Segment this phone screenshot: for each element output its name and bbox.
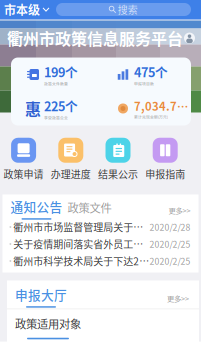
button[interactable]: 个人中心 bbox=[184, 33, 195, 44]
button[interactable]: 申报指南 bbox=[142, 138, 189, 180]
button[interactable]: 搜索 bbox=[56, 3, 191, 16]
staticText: 衢州市市场监督管理局关于… bbox=[11, 220, 143, 234]
staticText: 475个 bbox=[134, 62, 168, 81]
button[interactable]: 申报大厅 bbox=[7, 285, 67, 308]
button[interactable]: 政策适用对象 bbox=[7, 309, 81, 339]
button[interactable]: 市本级 bbox=[0, 0, 56, 19]
staticText: 结果公示 bbox=[98, 167, 138, 181]
staticText: 申报大厅 bbox=[15, 285, 67, 304]
staticText: 享受政策企业 bbox=[44, 115, 68, 120]
staticText: 累计兑现金额(万元) bbox=[134, 114, 168, 119]
staticText: 2020/2/25 bbox=[149, 255, 190, 267]
staticText: 衢州市政策信息服务平台 bbox=[7, 26, 183, 50]
staticText: 更多>> bbox=[167, 293, 189, 304]
staticText: 申报指南 bbox=[145, 167, 185, 181]
staticText: 市本级 bbox=[4, 1, 40, 18]
staticText: 2020/2/25 bbox=[149, 238, 190, 250]
staticText: 关于疫情期间落实省外员工… bbox=[11, 237, 143, 251]
staticText: 衢州市科学技术局关于下达2… bbox=[11, 254, 149, 268]
staticText: 搜索 bbox=[116, 2, 138, 17]
button[interactable]: 政策申请 bbox=[0, 138, 47, 180]
button[interactable]: 结果公示 bbox=[94, 138, 142, 180]
button[interactable]: 通知公告 bbox=[2, 197, 62, 220]
staticText: 更多>> bbox=[168, 205, 190, 216]
staticText: 办理进度 bbox=[51, 167, 91, 181]
staticText: 199个 bbox=[44, 62, 78, 81]
button[interactable]: 办理进度 bbox=[47, 138, 94, 180]
button[interactable]: 衢州市科学技术局关于下达2… bbox=[2, 252, 198, 269]
staticText: 通知公告 bbox=[10, 197, 62, 216]
staticText: 政策申请 bbox=[4, 167, 44, 181]
staticText: 政策适用对象 bbox=[15, 315, 81, 332]
button[interactable]: 更多>> bbox=[168, 205, 198, 220]
button[interactable]: 关于疫情期间落实省外员工… bbox=[2, 235, 198, 252]
staticText: 2020/2/28 bbox=[149, 221, 190, 233]
staticText: 申报项目数 bbox=[134, 81, 154, 86]
button[interactable]: 更多>> bbox=[167, 293, 199, 308]
staticText: 政策文件 bbox=[67, 199, 111, 216]
staticText: 7,034.72… bbox=[134, 97, 191, 114]
staticText: 惠 bbox=[25, 97, 41, 120]
staticText: 225个 bbox=[44, 96, 78, 115]
staticText: 政策文件数量 bbox=[44, 81, 68, 86]
button[interactable]: 衢州市市场监督管理局关于… bbox=[2, 218, 198, 235]
button[interactable]: 政策文件 bbox=[62, 199, 111, 220]
